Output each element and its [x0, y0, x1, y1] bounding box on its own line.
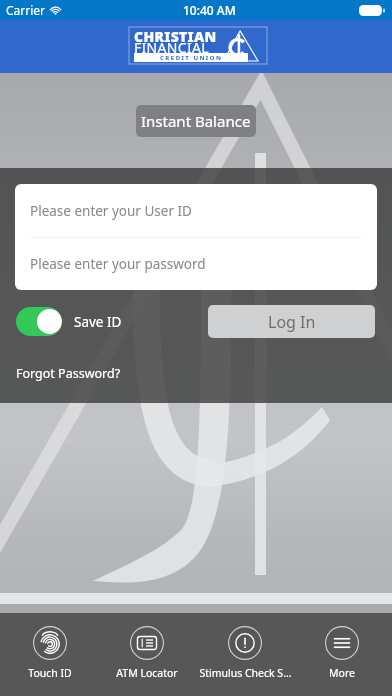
staticText: CHRISTIAN	[134, 27, 217, 46]
button[interactable]: Please enter your User ID	[15, 184, 377, 237]
button[interactable]: More	[294, 613, 390, 680]
staticText: Touch ID	[28, 666, 72, 680]
staticText: ATM Locator	[116, 666, 178, 680]
staticText: FINANCIAL	[134, 38, 209, 57]
staticText: Carrier	[6, 2, 46, 18]
staticText: Log In	[268, 311, 316, 333]
staticText: Please enter your User ID	[30, 202, 192, 220]
button[interactable]: Log In	[208, 305, 375, 338]
staticText: CREDIT UNION	[160, 54, 223, 62]
button[interactable]: Save ID toggle	[16, 307, 62, 336]
button[interactable]: Please enter your password	[15, 238, 377, 290]
button[interactable]: Stimulus Check Status	[197, 613, 293, 680]
staticText: Please enter your password	[30, 255, 206, 273]
staticText: Save ID	[74, 313, 122, 331]
button[interactable]: Instant Balance	[136, 105, 256, 137]
staticText: Instant Balance	[141, 111, 251, 131]
staticText: More	[329, 666, 355, 680]
staticText: 10:40 AM	[183, 2, 236, 18]
staticText: Stimulus Check S...	[199, 666, 292, 680]
button[interactable]: ATM Locator	[99, 613, 195, 680]
button[interactable]: Touch ID	[2, 613, 98, 680]
staticText: Forgot Password?	[16, 365, 121, 382]
button[interactable]: Forgot Password?	[16, 365, 121, 382]
